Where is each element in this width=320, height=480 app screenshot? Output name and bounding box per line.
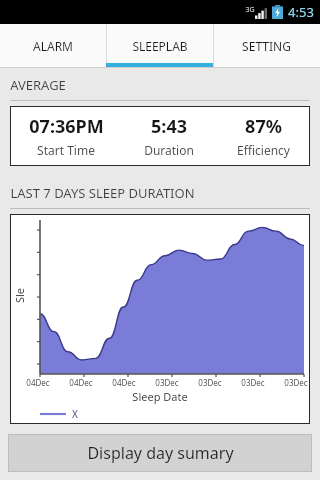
staticText: Start Time bbox=[37, 142, 95, 158]
staticText: SLEEPLAB bbox=[132, 38, 188, 54]
button[interactable]: SLEEPLAB bbox=[106, 24, 213, 67]
staticText: LAST 7 DAYS SLEEP DURATION bbox=[10, 184, 195, 202]
staticText: Sleep Date bbox=[132, 389, 188, 404]
staticText: 03Dec bbox=[241, 377, 265, 388]
button[interactable]: Display day sumary bbox=[8, 434, 312, 472]
staticText: 03Dec bbox=[284, 377, 308, 388]
button[interactable]: 07:36PM bbox=[10, 106, 310, 166]
staticText: Sleep Hours bbox=[11, 286, 26, 304]
staticText: Duration bbox=[144, 142, 194, 158]
staticText: 04Dec bbox=[112, 377, 136, 388]
staticText: 04Dec bbox=[26, 377, 50, 388]
staticText: 3G bbox=[245, 5, 255, 15]
staticText: 03Dec bbox=[198, 377, 222, 388]
staticText: 87% bbox=[245, 114, 282, 139]
staticText: SETTING bbox=[242, 38, 291, 54]
staticText: ALARM bbox=[33, 38, 73, 54]
staticText: 5:43 bbox=[151, 114, 187, 139]
staticText: Efficiency bbox=[237, 142, 290, 158]
button[interactable]: SETTING bbox=[213, 24, 320, 67]
staticText: Display day sumary bbox=[87, 442, 234, 464]
button[interactable]: Sleep Hours bbox=[10, 214, 310, 424]
staticText: AVERAGE bbox=[10, 76, 66, 94]
staticText: 4:53 bbox=[288, 3, 314, 21]
staticText: X bbox=[72, 407, 78, 421]
staticText: 03Dec bbox=[155, 377, 179, 388]
button[interactable]: ALARM bbox=[0, 24, 106, 67]
staticText: 04Dec bbox=[69, 377, 93, 388]
staticText: 07:36PM bbox=[29, 114, 104, 139]
